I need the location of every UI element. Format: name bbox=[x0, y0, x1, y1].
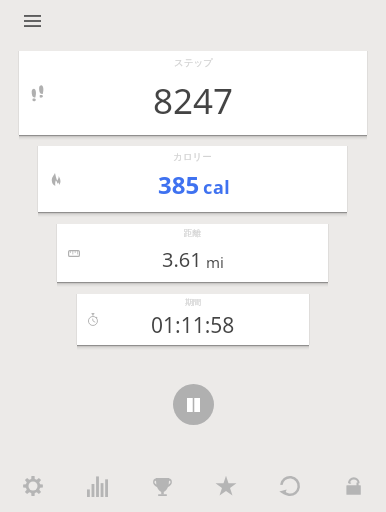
button[interactable]: Favourites bbox=[194, 463, 258, 509]
staticText: 01:11:58 bbox=[151, 311, 235, 340]
button[interactable]: ステップ bbox=[19, 51, 367, 135]
button[interactable]: Statistics bbox=[65, 463, 130, 509]
button[interactable]: 距離 bbox=[57, 224, 328, 282]
staticText: 3.61 bbox=[162, 246, 202, 273]
staticText: カロリー bbox=[173, 151, 212, 163]
button[interactable]: 期間 bbox=[77, 294, 309, 345]
staticText: mi bbox=[202, 252, 224, 272]
staticText: ステップ bbox=[174, 57, 213, 69]
button[interactable]: カロリー bbox=[38, 146, 347, 212]
button[interactable]: Reset bbox=[258, 463, 322, 509]
button[interactable]: Lock bbox=[322, 463, 386, 509]
button[interactable]: Achievements bbox=[130, 463, 194, 509]
staticText: 385 bbox=[158, 168, 200, 201]
staticText: 期間 bbox=[185, 297, 201, 307]
staticText: 8247 bbox=[153, 77, 234, 125]
button[interactable]: Menu bbox=[16, 7, 49, 35]
staticText: cal bbox=[203, 175, 231, 200]
button[interactable]: Pause bbox=[173, 384, 214, 425]
button[interactable]: Settings bbox=[0, 463, 65, 509]
staticText: 距離 bbox=[184, 228, 201, 239]
